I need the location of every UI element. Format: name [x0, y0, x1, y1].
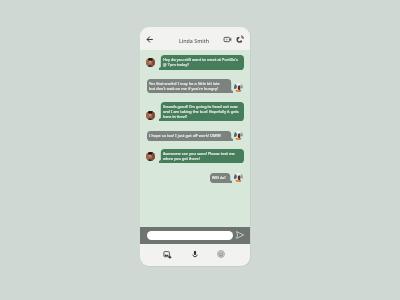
button[interactable]: Will do!	[210, 173, 232, 183]
button[interactable]: Back	[146, 36, 153, 43]
staticText: Linda Smith	[179, 37, 209, 44]
button[interactable]: Yes that works! I may be a little bit la…	[147, 79, 233, 93]
staticText: Awesome see you soon! Please text me whe…	[163, 151, 235, 161]
button[interactable]: I hope so too! I just got off work! OMW!	[147, 131, 233, 141]
button[interactable]: Call	[235, 35, 244, 44]
staticText: Sounds good! I'm going to head out now a…	[163, 104, 239, 119]
button[interactable]: Sounds good! I'm going to head out now a…	[159, 102, 244, 121]
button[interactable]: Voice message	[190, 249, 200, 259]
staticText: Yes that works! I may be a little bit la…	[149, 81, 220, 91]
button[interactable]: Hey do you still want to meet at Portill…	[159, 55, 244, 70]
button[interactable]: Add image	[162, 249, 173, 260]
button[interactable]: Emoji	[216, 249, 226, 259]
staticText: Will do!	[212, 175, 226, 180]
button[interactable]: Awesome see you soon! Please text me whe…	[159, 149, 244, 163]
button[interactable]: Send	[236, 231, 244, 239]
staticText: I hope so too! I just got off work! OMW!	[149, 133, 222, 138]
button[interactable]	[147, 231, 233, 240]
button[interactable]: Video call	[223, 35, 232, 44]
staticText: Hey do you still want to meet at Portill…	[163, 57, 238, 67]
